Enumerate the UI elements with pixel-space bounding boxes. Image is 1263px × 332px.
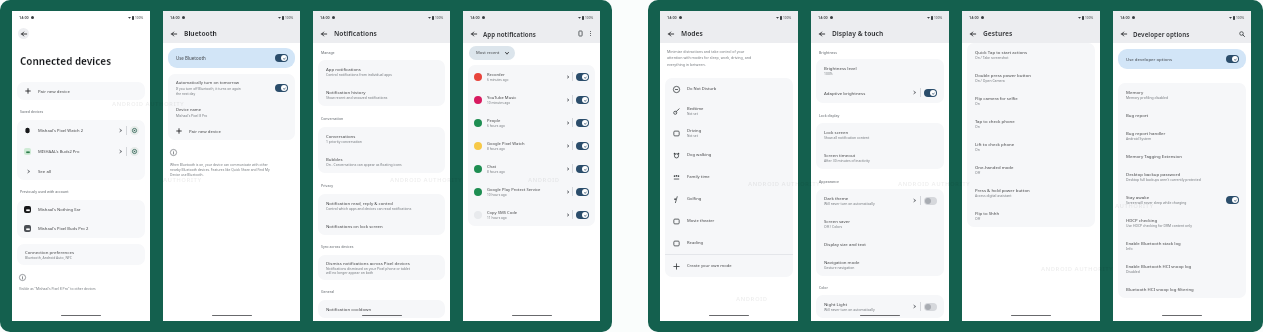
- button[interactable]: Enable Bluetooth HCI snoop log: [1118, 257, 1246, 280]
- button[interactable]: Toggle: [576, 165, 589, 173]
- button[interactable]: Device name: [168, 102, 295, 122]
- button[interactable]: Screen timeout: [816, 146, 944, 169]
- button[interactable]: Pair new device: [17, 82, 145, 100]
- button[interactable]: Back: [468, 28, 479, 39]
- button[interactable]: Connection preferences: [17, 244, 145, 265]
- button[interactable]: Navigation mode: [816, 253, 944, 276]
- button[interactable]: One-handed mode: [967, 158, 1095, 181]
- button[interactable]: Toggle: [576, 188, 589, 196]
- button[interactable]: Device settings: [130, 126, 139, 135]
- button[interactable]: Lift to check phone: [967, 135, 1095, 158]
- button[interactable]: Chat: [468, 157, 595, 180]
- button[interactable]: Mishaal's Pixel Buds Pro 2: [17, 219, 145, 238]
- button[interactable]: Use developer options: [1118, 49, 1246, 69]
- button[interactable]: Tap to check phone: [967, 112, 1095, 135]
- staticText: Dog walking: [687, 152, 712, 158]
- button[interactable]: Back: [168, 28, 179, 39]
- button[interactable]: Notification cooldown: [318, 300, 445, 318]
- button[interactable]: Family time: [665, 166, 793, 188]
- button[interactable]: Back: [967, 28, 978, 39]
- button[interactable]: Back: [665, 28, 676, 39]
- button[interactable]: Toggle: [275, 54, 288, 62]
- button[interactable]: Bubbles: [318, 150, 445, 173]
- button[interactable]: Flip camera for selfie: [967, 89, 1095, 112]
- button[interactable]: Toggle: [275, 84, 288, 92]
- button[interactable]: Lock screen: [816, 123, 944, 146]
- button[interactable]: People: [468, 111, 595, 134]
- button[interactable]: Mishaal's Nothing Ear: [17, 200, 145, 219]
- button[interactable]: YouTube Music: [468, 88, 595, 111]
- button[interactable]: HDCP checking: [1118, 211, 1246, 234]
- button[interactable]: Driving: [665, 122, 793, 144]
- button[interactable]: Bedtime: [665, 100, 793, 122]
- button[interactable]: Notification read, reply & control: [318, 194, 445, 217]
- button[interactable]: Toggle: [1226, 196, 1239, 204]
- button[interactable]: Back: [318, 28, 329, 39]
- button[interactable]: Automatically turn on tomorrow: [168, 74, 295, 102]
- button[interactable]: Notification history: [576, 29, 585, 38]
- button[interactable]: Bug report: [1118, 106, 1246, 124]
- staticText: Minimize distractions and take control o…: [667, 49, 752, 67]
- button[interactable]: Movie theater: [665, 210, 793, 232]
- button[interactable]: Toggle: [1226, 55, 1239, 63]
- button[interactable]: Create your own mode: [665, 255, 793, 277]
- button[interactable]: Enable Bluetooth stack log: [1118, 234, 1246, 257]
- button[interactable]: Back: [18, 28, 29, 39]
- staticText: Pair new device: [38, 88, 70, 94]
- button[interactable]: Golfing: [665, 188, 793, 210]
- button[interactable]: Conversations: [318, 127, 445, 150]
- button[interactable]: Dark theme: [816, 189, 944, 212]
- button[interactable]: MISHAAL's Buds2 Pro: [17, 141, 145, 162]
- button[interactable]: Do Not Disturb: [665, 78, 793, 100]
- staticText: Control notifications from individual ap…: [326, 72, 392, 77]
- button[interactable]: Toggle: [924, 89, 937, 97]
- button[interactable]: Notifications on lock screen: [318, 217, 445, 235]
- button[interactable]: Use Bluetooth: [168, 48, 295, 68]
- button[interactable]: Toggle: [576, 142, 589, 150]
- staticText: HDCP checking: [1126, 217, 1158, 223]
- staticText: Most recent: [476, 50, 500, 56]
- button[interactable]: Search: [1237, 29, 1246, 38]
- button[interactable]: Most recent: [469, 46, 515, 60]
- button[interactable]: Toggle: [576, 119, 589, 127]
- button[interactable]: Dismiss notifications across Pixel devic…: [318, 255, 445, 280]
- button[interactable]: Toggle: [924, 197, 937, 205]
- button[interactable]: Pair new device: [168, 122, 295, 140]
- staticText: Screen saver: [824, 218, 851, 224]
- button[interactable]: Toggle: [576, 96, 589, 104]
- button[interactable]: Toggle: [576, 73, 589, 81]
- button[interactable]: Flip to Shhh: [967, 204, 1095, 227]
- button[interactable]: Adaptive brightness: [816, 82, 944, 103]
- button[interactable]: See all: [17, 162, 145, 180]
- button[interactable]: Memory Tagging Extension: [1118, 147, 1246, 165]
- button[interactable]: Bug report handler: [1118, 124, 1246, 147]
- button[interactable]: Google Play Protect Service: [468, 180, 595, 203]
- button[interactable]: Quick Tap to start actions: [967, 43, 1095, 66]
- button[interactable]: Reading: [665, 232, 793, 254]
- button[interactable]: Brightness level: [816, 59, 944, 82]
- button[interactable]: Notification history: [318, 83, 445, 106]
- button[interactable]: Google Pixel Watch: [468, 134, 595, 157]
- button[interactable]: Double press power button: [967, 66, 1095, 89]
- staticText: Display & touch: [832, 29, 884, 38]
- button[interactable]: Desktop backup password: [1118, 165, 1246, 188]
- button[interactable]: More options: [586, 29, 595, 38]
- button[interactable]: Copy SMS Code: [468, 203, 595, 226]
- button[interactable]: App notifications: [318, 60, 445, 83]
- button[interactable]: Mishaal's Pixel Watch 2: [17, 120, 145, 141]
- button[interactable]: Dog walking: [665, 144, 793, 166]
- staticText: Privacy: [321, 183, 333, 188]
- button[interactable]: Screen saver: [816, 212, 944, 235]
- button[interactable]: Recorder: [468, 65, 595, 88]
- button[interactable]: Night Light: [816, 295, 944, 318]
- button[interactable]: Memory: [1118, 83, 1246, 106]
- button[interactable]: Back: [816, 28, 827, 39]
- button[interactable]: Toggle: [576, 211, 589, 219]
- button[interactable]: Display size and text: [816, 235, 944, 253]
- button[interactable]: Device settings: [130, 147, 139, 156]
- button[interactable]: Stay awake: [1118, 188, 1246, 211]
- button[interactable]: Toggle: [924, 303, 937, 311]
- button[interactable]: Back: [1118, 28, 1129, 39]
- button[interactable]: Press & hold power button: [967, 181, 1095, 204]
- button[interactable]: Bluetooth HCI snoop log filtering: [1118, 280, 1246, 298]
